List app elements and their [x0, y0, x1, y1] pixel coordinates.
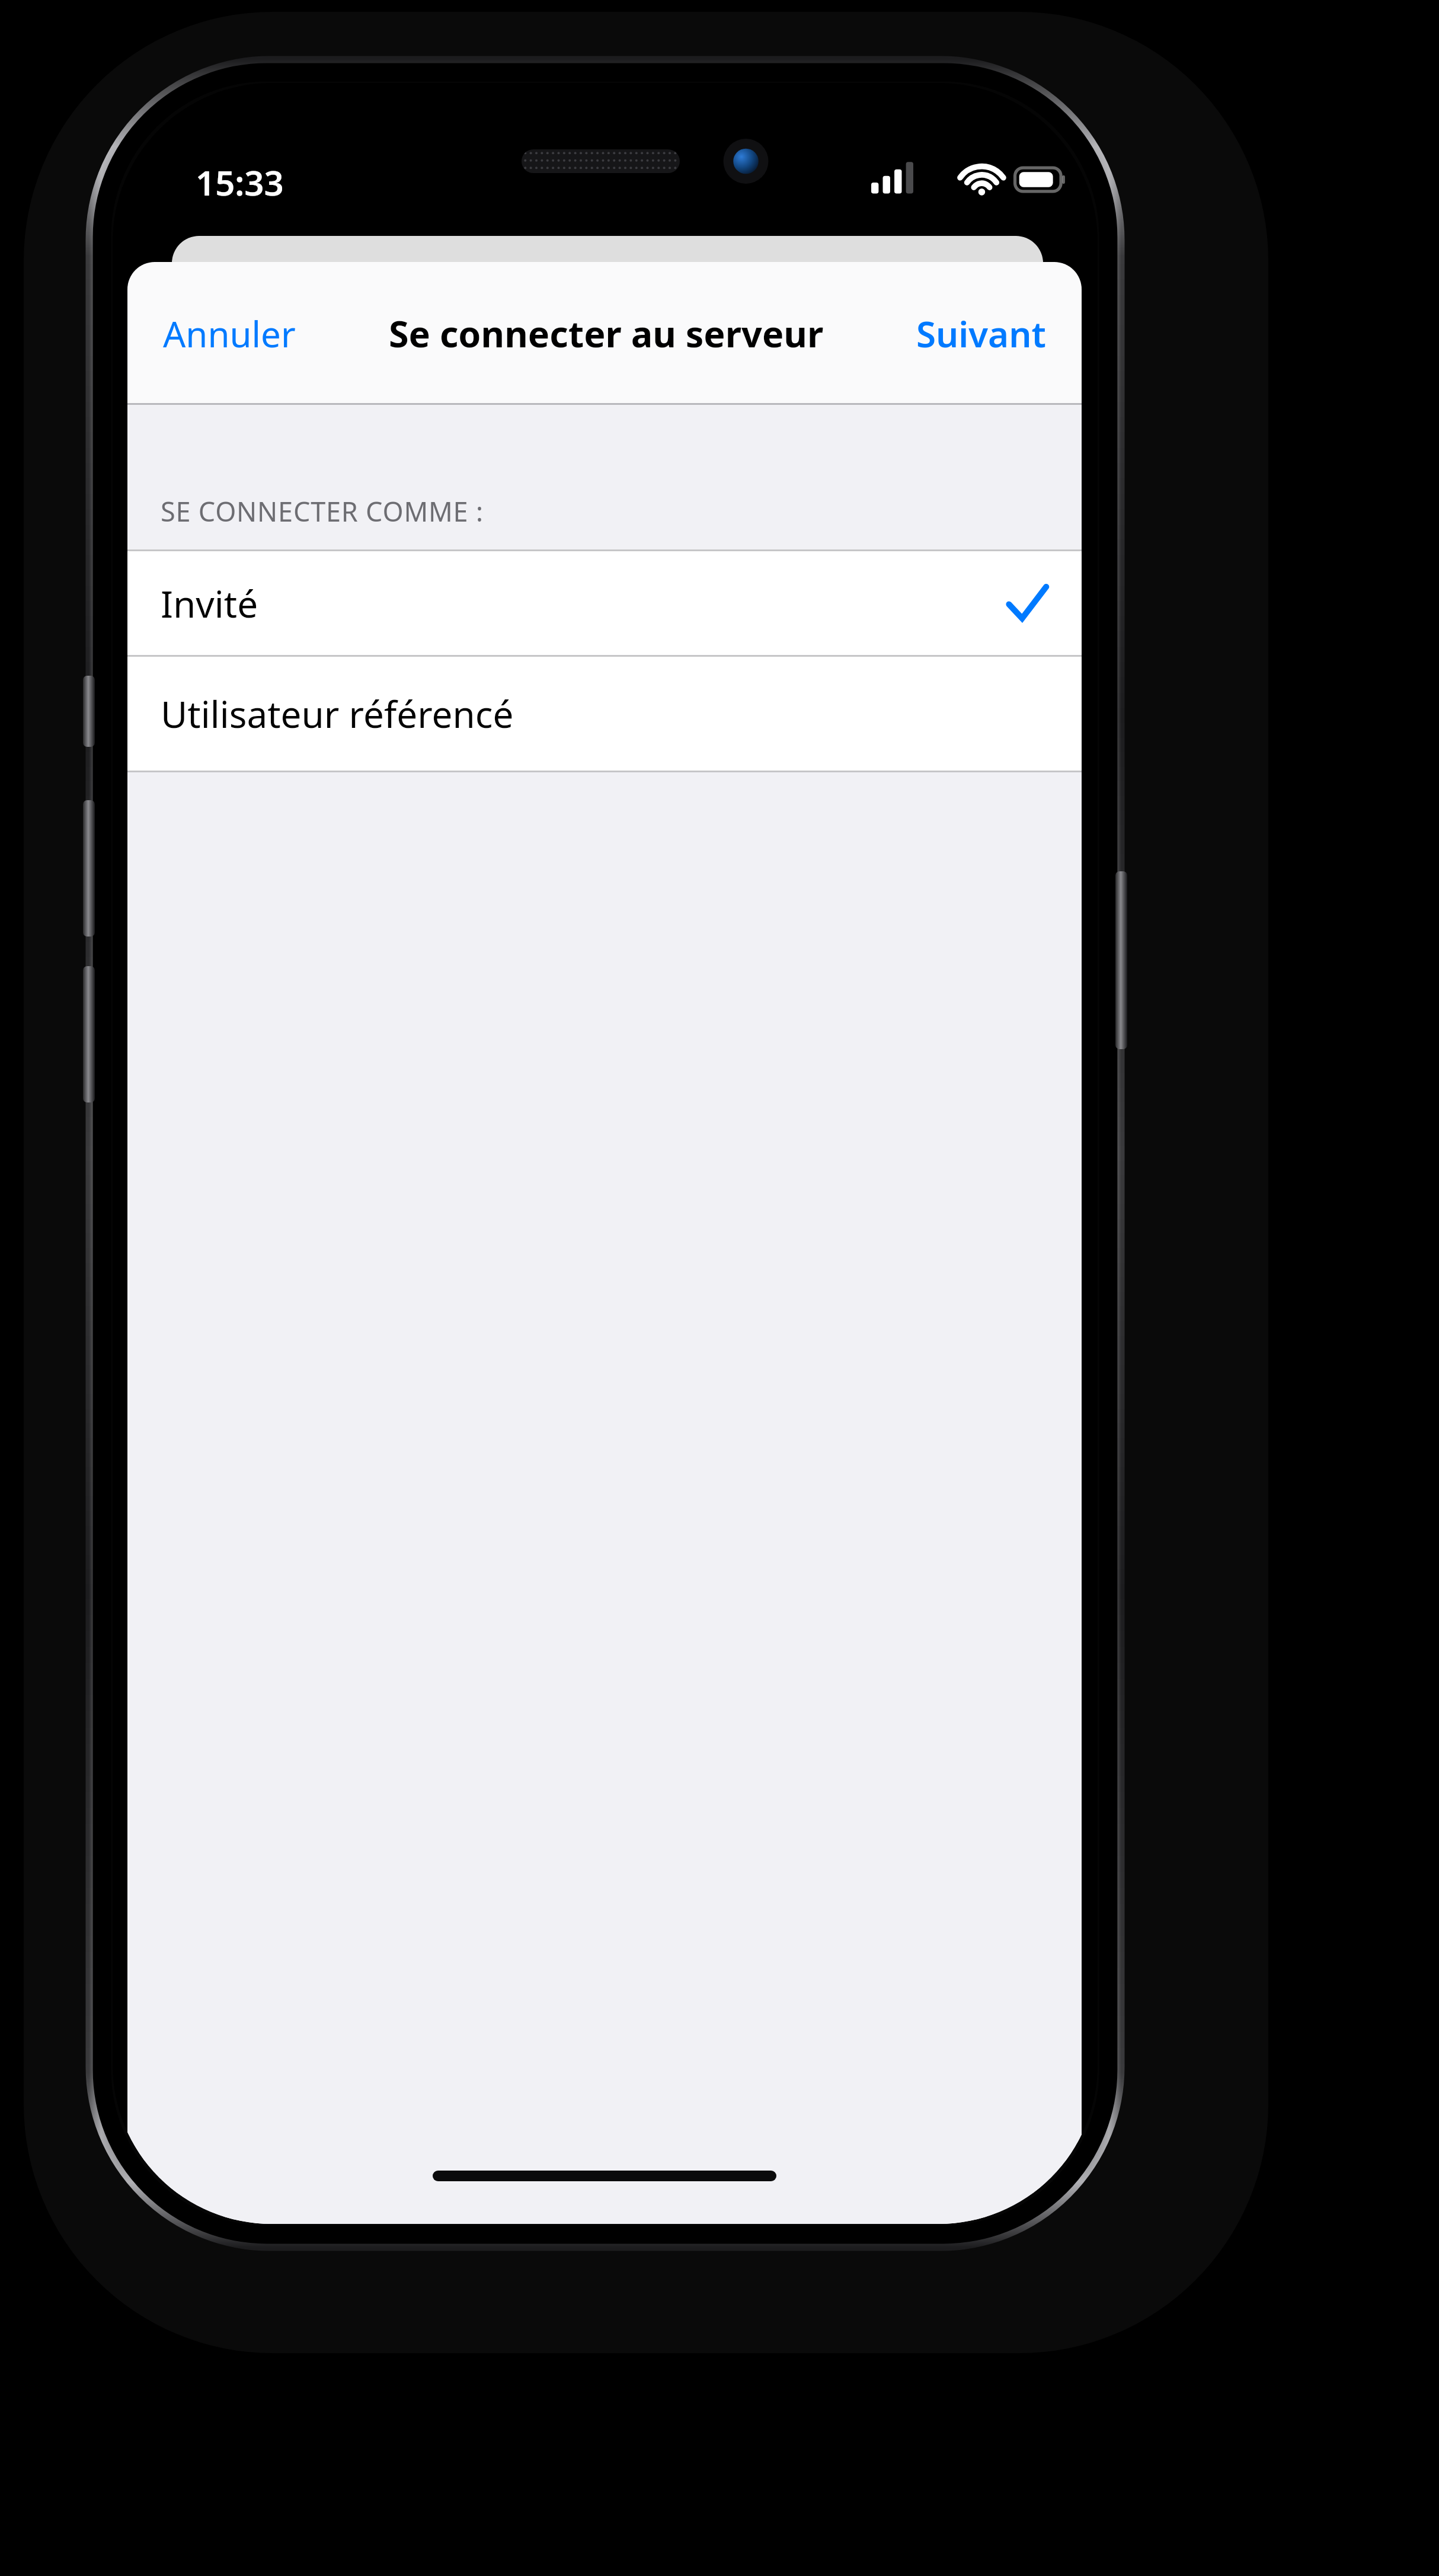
button[interactable]: Invité [127, 551, 1082, 655]
staticText: Annuler [163, 309, 296, 358]
staticText: SE CONNECTER COMME : [161, 493, 484, 529]
staticText: Suivant [916, 309, 1046, 358]
staticText: Invité [161, 579, 258, 628]
staticText: Se connecter au serveur [389, 309, 824, 358]
other: Sélectionné [1005, 581, 1048, 625]
button[interactable]: Suivant [907, 300, 1056, 367]
button[interactable]: Utilisateur référencé [127, 657, 1082, 771]
other: Réseau, Wi-Fi, batterie [871, 161, 1067, 198]
staticText: 15:33 [196, 159, 284, 200]
staticText: Utilisateur référencé [161, 689, 514, 739]
button[interactable]: Annuler [154, 300, 305, 367]
